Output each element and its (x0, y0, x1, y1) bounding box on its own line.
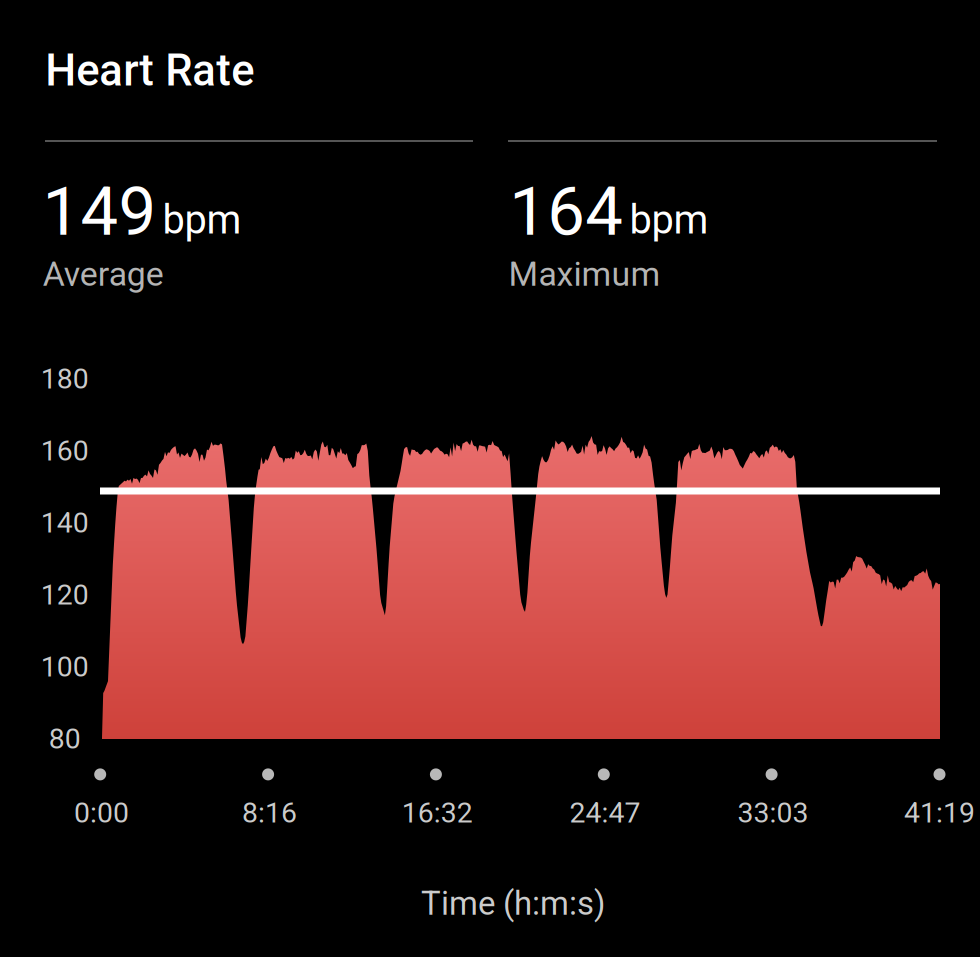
staticText: Average (43, 254, 164, 294)
staticText: 41:19 (904, 796, 975, 830)
staticText: 0:00 (74, 796, 129, 830)
staticText: 24:47 (570, 796, 641, 830)
staticText: bpm (162, 196, 241, 243)
staticText: 100 (41, 650, 89, 683)
staticText: bpm (629, 196, 708, 243)
staticText: Time (h:m:s) (421, 884, 605, 923)
staticText: 8:16 (242, 796, 297, 830)
staticText: 160 (41, 434, 89, 467)
staticText: Heart Rate (45, 45, 254, 96)
staticText: 16:32 (402, 796, 473, 830)
staticText: 33:03 (737, 796, 808, 830)
staticText: 164 (509, 173, 623, 251)
staticText: 140 (41, 506, 89, 539)
staticText: Maximum (509, 254, 661, 294)
staticText: 80 (49, 722, 81, 755)
staticText: 120 (41, 578, 89, 611)
staticText: 149 (42, 173, 156, 251)
staticText: 180 (41, 362, 89, 395)
